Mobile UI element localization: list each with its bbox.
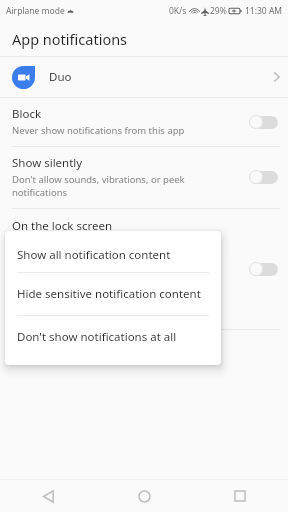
staticText: On the lock screen — [12, 218, 113, 234]
staticText: Block — [12, 106, 42, 122]
other: Block — [249, 115, 278, 129]
staticText: App notifications — [12, 29, 128, 49]
other: Override Do Not Disturb — [249, 262, 278, 276]
staticText: Hide sensitive notification content — [17, 286, 201, 302]
button[interactable]: Recent apps — [192, 480, 288, 512]
button[interactable]: Block — [0, 98, 288, 146]
staticText: Override Do Not Disturb — [12, 263, 144, 279]
staticText: Duo — [49, 69, 273, 85]
staticText: Airplane mode — [6, 5, 65, 17]
button[interactable]: Back — [0, 480, 96, 512]
button[interactable]: Show all notification content — [5, 238, 221, 272]
button[interactable]: Show silently — [0, 147, 288, 208]
staticText: Let these notifications continue to inte… — [12, 281, 186, 320]
button[interactable]: Hide sensitive notification content — [5, 273, 221, 315]
staticText: Show all notification content — [17, 247, 171, 263]
staticText: 29% — [210, 5, 227, 17]
staticText: Never show notifications from this app — [12, 124, 185, 137]
staticText: 0K/s — [169, 5, 187, 17]
button[interactable]: Don't show notifications at all — [5, 316, 221, 358]
button[interactable]: Home — [96, 480, 192, 512]
other: Show silently — [249, 170, 278, 184]
staticText: 11:30 AM — [245, 5, 283, 17]
button[interactable]: Duo — [0, 57, 288, 97]
staticText: Show silently — [12, 155, 83, 171]
button[interactable]: On the lock screen — [0, 209, 288, 329]
staticText: Don't show notifications at all — [17, 329, 177, 345]
staticText: Don't allow sounds, vibrations, or peek … — [12, 173, 185, 199]
